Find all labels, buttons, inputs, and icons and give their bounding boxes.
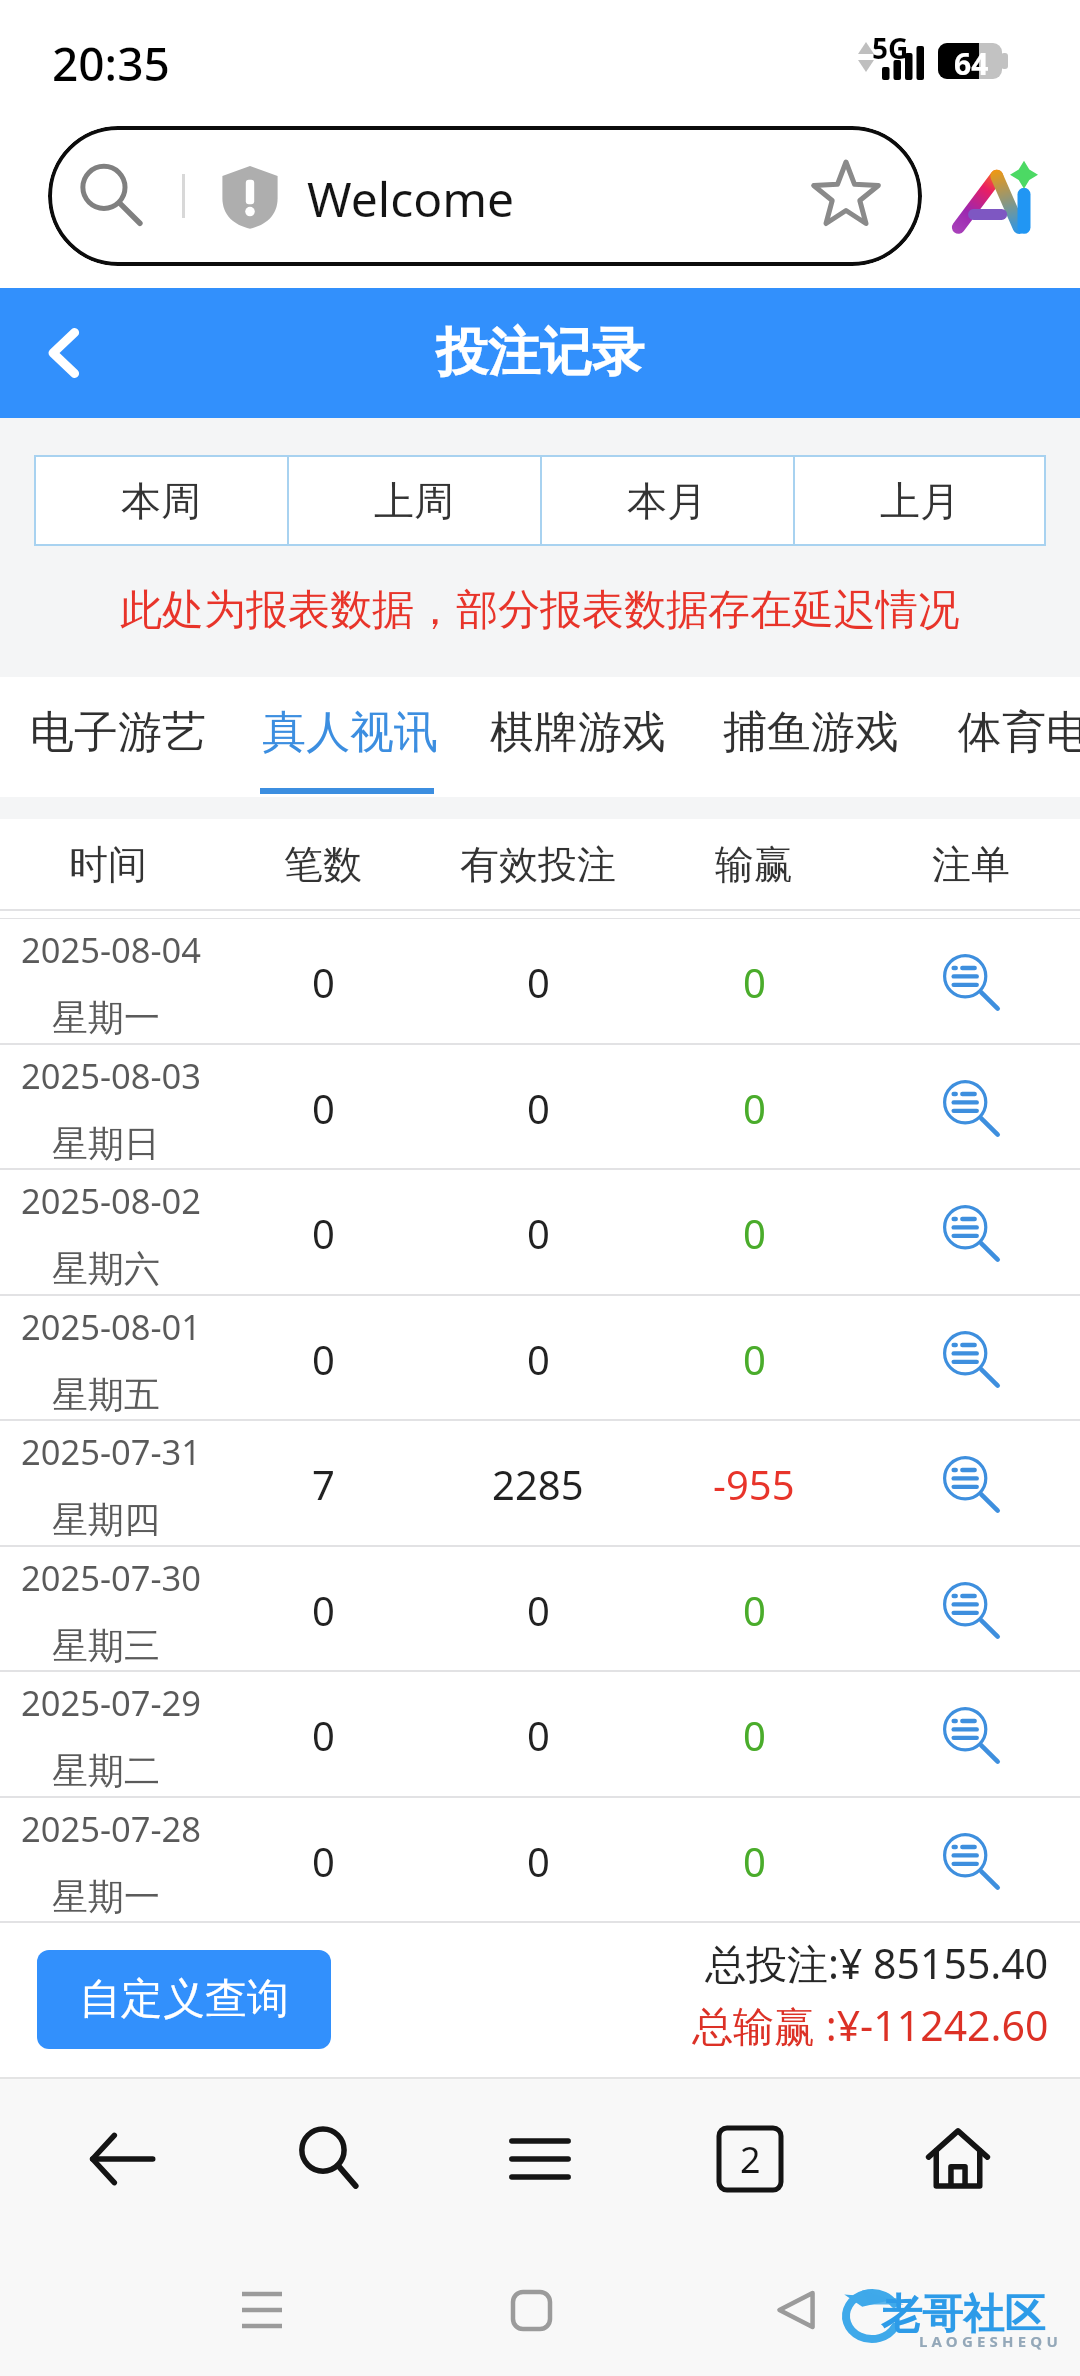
button[interactable]: 注单详情 bbox=[925, 1438, 1017, 1530]
staticText: 电子游艺 bbox=[30, 705, 206, 760]
button[interactable]: 2025-08-03 bbox=[0, 1045, 1080, 1170]
staticText: 有效投注 bbox=[460, 840, 616, 889]
button[interactable]: 2025-08-04 bbox=[0, 919, 1080, 1045]
staticText: -955 bbox=[713, 1457, 795, 1511]
staticText: 捕鱼游戏 bbox=[723, 705, 899, 760]
button[interactable]: 本周 bbox=[34, 455, 287, 546]
button[interactable]: Back bbox=[0, 288, 130, 418]
button[interactable]: 2025-08-02 bbox=[0, 1170, 1080, 1296]
staticText: 总输赢 :¥-11242.60 bbox=[692, 1997, 1049, 2053]
button[interactable]: Tabs bbox=[695, 2104, 805, 2214]
button[interactable]: 棋牌游戏 bbox=[460, 677, 690, 797]
button[interactable]: 注单详情 bbox=[925, 1564, 1017, 1656]
staticText: 0 bbox=[743, 1708, 766, 1762]
staticText: 体育电竞 bbox=[958, 705, 1080, 760]
staticText: 2025-08-03 bbox=[21, 1052, 202, 1099]
staticText: 本月 bbox=[627, 476, 707, 526]
staticText: 2025-08-04 bbox=[21, 926, 202, 973]
button[interactable]: Home bbox=[481, 2260, 581, 2360]
staticText: 0 bbox=[743, 955, 766, 1009]
button[interactable]: 注单详情 bbox=[925, 1815, 1017, 1907]
staticText: 0 bbox=[527, 1081, 550, 1135]
staticText: 星期一 bbox=[52, 995, 160, 1040]
staticText: 此处为报表数据，部分报表数据存在延迟情况 bbox=[0, 584, 1080, 637]
staticText: 星期四 bbox=[52, 1497, 160, 1542]
staticText: 星期一 bbox=[52, 1874, 160, 1919]
button[interactable]: Search bbox=[275, 2104, 385, 2214]
staticText: 0 bbox=[312, 1583, 335, 1637]
button[interactable]: 2025-08-01 bbox=[0, 1296, 1080, 1421]
staticText: 星期五 bbox=[52, 1372, 160, 1417]
button[interactable]: 注单详情 bbox=[925, 1062, 1017, 1154]
staticText: 20:35 bbox=[52, 32, 170, 95]
staticText: 2285 bbox=[492, 1457, 584, 1511]
staticText: 0 bbox=[743, 1834, 766, 1888]
staticText: 0 bbox=[527, 1583, 550, 1637]
staticText: 本周 bbox=[121, 476, 201, 526]
staticText: 笔数 bbox=[284, 840, 362, 889]
staticText: 星期三 bbox=[52, 1623, 160, 1668]
button[interactable]: Welcome bbox=[48, 126, 922, 266]
staticText: 5G bbox=[872, 29, 909, 67]
staticText: 64 bbox=[954, 43, 989, 79]
staticText: 上周 bbox=[374, 476, 454, 526]
button[interactable]: 2025-07-30 bbox=[0, 1547, 1080, 1672]
staticText: 0 bbox=[743, 1206, 766, 1260]
staticText: 0 bbox=[743, 1332, 766, 1386]
button[interactable]: 上月 bbox=[793, 455, 1046, 546]
staticText: Welcome bbox=[307, 166, 515, 231]
staticText: 0 bbox=[743, 1583, 766, 1637]
button[interactable]: 2025-07-28 bbox=[0, 1798, 1080, 1923]
button[interactable]: 注单详情 bbox=[925, 1313, 1017, 1405]
staticText: 0 bbox=[527, 1332, 550, 1386]
button[interactable]: 注单详情 bbox=[925, 1187, 1017, 1279]
staticText: 自定义查询 bbox=[79, 1973, 289, 2026]
button[interactable]: 2025-07-31 bbox=[0, 1421, 1080, 1547]
staticText: 总投注:¥ 85155.40 bbox=[705, 1935, 1049, 1991]
button[interactable]: 注单详情 bbox=[925, 936, 1017, 1028]
staticText: 投注记录 bbox=[436, 320, 644, 386]
button[interactable]: Menu bbox=[485, 2104, 595, 2214]
staticText: 0 bbox=[312, 1708, 335, 1762]
staticText: 0 bbox=[312, 1081, 335, 1135]
staticText: 2025-07-31 bbox=[21, 1428, 202, 1475]
staticText: 星期日 bbox=[52, 1121, 160, 1166]
staticText: 输赢 bbox=[715, 840, 793, 889]
button[interactable]: 体育电竞 bbox=[928, 677, 1080, 797]
staticText: 上月 bbox=[880, 476, 960, 526]
button[interactable]: 上周 bbox=[287, 455, 540, 546]
button[interactable]: Recents bbox=[212, 2260, 312, 2360]
staticText: 0 bbox=[312, 1332, 335, 1386]
staticText: 星期六 bbox=[52, 1246, 160, 1291]
staticText: 0 bbox=[527, 1708, 550, 1762]
staticText: 0 bbox=[527, 955, 550, 1009]
staticText: 0 bbox=[527, 1206, 550, 1260]
staticText: 时间 bbox=[69, 840, 147, 889]
staticText: 2025-07-30 bbox=[21, 1554, 202, 1601]
button[interactable]: 本月 bbox=[540, 455, 793, 546]
button[interactable]: 电子游艺 bbox=[0, 677, 230, 797]
staticText: 真人视讯 bbox=[262, 705, 438, 760]
button[interactable]: Home bbox=[903, 2104, 1013, 2214]
button[interactable]: 捕鱼游戏 bbox=[693, 677, 923, 797]
staticText: 注单 bbox=[932, 840, 1010, 889]
staticText: 0 bbox=[312, 1206, 335, 1260]
staticText: 2025-07-28 bbox=[21, 1805, 202, 1852]
staticText: LAOGESHEQU bbox=[919, 2331, 1062, 2351]
staticText: 0 bbox=[312, 1834, 335, 1888]
button[interactable]: 注单详情 bbox=[925, 1689, 1017, 1781]
staticText: 2025-08-02 bbox=[21, 1177, 202, 1224]
button[interactable]: 2025-07-29 bbox=[0, 1672, 1080, 1798]
staticText: 2025-07-29 bbox=[21, 1679, 202, 1726]
button[interactable]: Back bbox=[746, 2260, 846, 2360]
button[interactable]: 真人视讯 bbox=[232, 677, 462, 797]
staticText: 0 bbox=[312, 955, 335, 1009]
staticText: 2 bbox=[740, 2135, 761, 2184]
staticText: 星期二 bbox=[52, 1748, 160, 1793]
button[interactable]: Back bbox=[67, 2104, 177, 2214]
staticText: 0 bbox=[527, 1834, 550, 1888]
staticText: 2025-08-01 bbox=[21, 1303, 202, 1350]
staticText: 7 bbox=[312, 1457, 335, 1511]
staticText: 0 bbox=[743, 1081, 766, 1135]
button[interactable]: 自定义查询 bbox=[37, 1950, 331, 2049]
